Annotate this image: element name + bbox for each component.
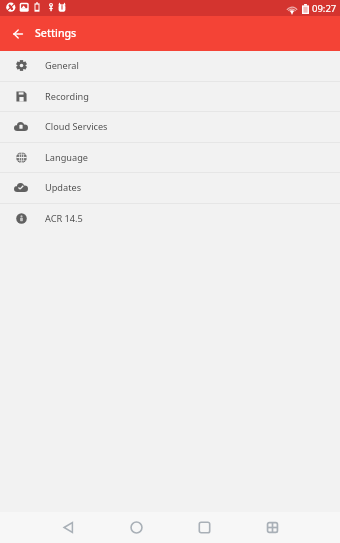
staticText: Recording (45, 90, 89, 103)
button[interactable]: Back (0, 16, 36, 51)
button[interactable]: Recent apps (187, 512, 221, 543)
button[interactable]: Home (119, 512, 153, 543)
button[interactable]: Back (51, 512, 85, 543)
staticText: Settings (35, 26, 77, 40)
button[interactable]: Recording (0, 82, 340, 112)
staticText: Language (45, 151, 88, 164)
staticText: Updates (45, 181, 82, 194)
button[interactable]: Cloud Services (0, 112, 340, 143)
button[interactable]: ACR 14.5 (0, 204, 340, 235)
staticText: Cloud Services (45, 120, 108, 133)
staticText: General (45, 59, 79, 72)
button[interactable]: Split screen (255, 512, 289, 543)
staticText: ACR 14.5 (45, 212, 83, 225)
button[interactable]: Updates (0, 173, 340, 204)
button[interactable]: Language (0, 143, 340, 173)
button[interactable]: General (0, 51, 340, 82)
staticText: 09:27 (312, 2, 337, 15)
